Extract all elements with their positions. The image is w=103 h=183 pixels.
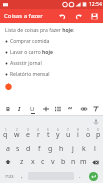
staticText: o (86, 130, 91, 140)
button[interactable]: f (34, 141, 45, 155)
staticText: 2 (16, 128, 18, 132)
button[interactable]: Enter (85, 169, 102, 183)
button[interactable]: 1 (0, 127, 11, 141)
staticText: l (94, 144, 96, 154)
button[interactable]: 5 (43, 127, 53, 141)
staticText: 5 (47, 128, 49, 132)
button[interactable]: 0 (93, 127, 103, 141)
staticText: g (48, 144, 53, 154)
button[interactable]: g (45, 141, 56, 155)
button[interactable]: Save (89, 11, 100, 22)
button[interactable]: v (48, 155, 58, 169)
button[interactable]: c (38, 155, 48, 169)
staticText: a (6, 144, 10, 154)
button[interactable]: 8 (73, 127, 83, 141)
staticText: w (14, 130, 20, 140)
button[interactable]: 7 (63, 127, 73, 141)
staticText: d (26, 144, 31, 154)
button[interactable]: Strikethrough (40, 103, 51, 115)
staticText: q (3, 130, 8, 140)
button[interactable]: Underline (27, 103, 38, 115)
staticText: k (82, 144, 86, 154)
button[interactable]: x (27, 155, 38, 169)
staticText: c (41, 157, 45, 167)
button[interactable]: 2 (11, 127, 22, 141)
button[interactable]: 4 (33, 127, 43, 141)
button[interactable]: Italic (14, 103, 25, 115)
staticText: Comprar comida (10, 38, 50, 45)
staticText: 4 (37, 128, 39, 132)
button[interactable]: , (17, 169, 27, 183)
staticText: . (79, 172, 81, 180)
staticText: n (71, 157, 76, 167)
staticText: f (38, 144, 41, 154)
button[interactable]: ?123 (1, 169, 17, 183)
staticText: m (80, 157, 87, 167)
staticText: Coisas a fazer (4, 12, 43, 20)
button[interactable]: 9 (83, 127, 93, 141)
button[interactable]: Undo (57, 11, 68, 22)
button[interactable]: n (68, 155, 78, 169)
staticText: p (96, 130, 101, 140)
button[interactable]: Shift (0, 155, 16, 169)
button[interactable]: a (3, 141, 13, 155)
button[interactable]: Clear formatting (90, 103, 101, 115)
button[interactable]: s (13, 141, 23, 155)
button[interactable]: Bullet list (52, 103, 63, 115)
staticText: 9 (87, 128, 89, 132)
staticText: y (56, 130, 60, 140)
button[interactable]: 3 (22, 127, 33, 141)
staticText: , (21, 172, 23, 180)
staticText: I (18, 105, 21, 113)
staticText: x (31, 157, 35, 167)
button[interactable]: Link (78, 103, 89, 115)
staticText: Lavar o carro hoje (10, 49, 53, 56)
staticText: “ (68, 103, 73, 115)
staticText: 0 (97, 128, 99, 132)
button[interactable]: k (78, 141, 89, 155)
staticText: v (51, 157, 55, 167)
staticText: 1 (5, 128, 7, 132)
staticText: b (61, 157, 66, 167)
button[interactable]: d (23, 141, 34, 155)
button[interactable]: Redo (73, 11, 84, 22)
staticText: j (72, 144, 74, 154)
staticText: i (77, 130, 79, 140)
button[interactable]: z (16, 155, 27, 169)
button[interactable]: Backspace (88, 155, 103, 169)
button[interactable]: Voice input (91, 117, 100, 126)
staticText: Lista de coisas pra fazer hoje: (5, 27, 75, 34)
staticText: Assistir jornal (10, 60, 42, 67)
staticText: 12:54 (89, 1, 102, 8)
staticText: 8 (77, 128, 79, 132)
staticText: s (16, 144, 20, 154)
button[interactable]: . (75, 169, 85, 183)
staticText: ?123 (5, 174, 14, 179)
staticText: t (47, 130, 50, 140)
staticText: B (6, 105, 10, 113)
button[interactable]: j (67, 141, 78, 155)
button[interactable]: l (89, 141, 100, 155)
staticText: z (20, 157, 24, 167)
button[interactable]: b (58, 155, 68, 169)
staticText: U (30, 105, 35, 113)
staticText: 6 (57, 128, 59, 132)
staticText: 3 (27, 128, 29, 132)
staticText: r (37, 130, 40, 140)
button[interactable]: Quote (65, 103, 76, 115)
staticText: e (26, 130, 30, 140)
staticText: h (59, 144, 64, 154)
staticText: Relatório mensal (10, 71, 50, 78)
button[interactable]: Bold (2, 103, 13, 115)
button[interactable]: h (56, 141, 67, 155)
staticText: 7 (67, 128, 69, 132)
staticText: u (66, 130, 71, 140)
button[interactable]: 6 (53, 127, 63, 141)
button[interactable]: m (78, 155, 88, 169)
